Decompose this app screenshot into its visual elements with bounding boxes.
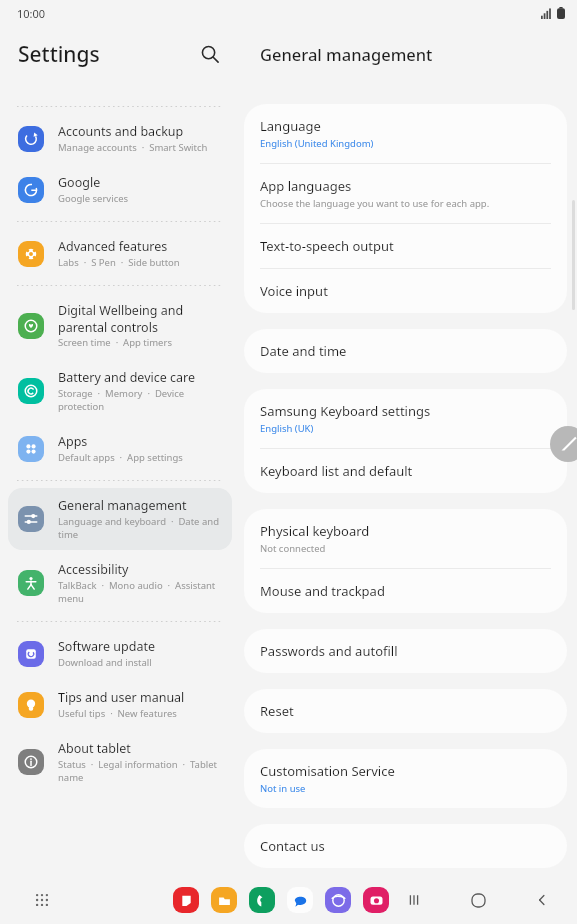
staticText: Keyboard list and default xyxy=(260,462,413,480)
staticText: App languages xyxy=(260,177,352,195)
button[interactable]: Customisation Service xyxy=(244,749,567,808)
staticText: Date and time xyxy=(260,342,347,360)
button[interactable]: Edit xyxy=(550,426,577,462)
button[interactable]: phone xyxy=(249,887,275,913)
button[interactable]: Contact us xyxy=(244,824,567,868)
button[interactable]: Digital Wellbeing and parental controls xyxy=(8,293,232,358)
staticText: Software update xyxy=(58,638,155,655)
staticText: General management xyxy=(58,497,187,514)
staticText: Labs · S Pen · Side button xyxy=(58,256,180,269)
staticText: Google xyxy=(58,174,101,191)
button[interactable]: note xyxy=(173,887,199,913)
button[interactable]: Physical keyboard xyxy=(244,509,567,568)
button[interactable]: Keyboard list and default xyxy=(244,449,567,493)
staticText: Samsung Keyboard settings xyxy=(260,402,431,420)
staticText: Not in use xyxy=(260,782,306,795)
button[interactable]: Text-to-speech output xyxy=(244,224,567,268)
staticText: Voice input xyxy=(260,282,328,300)
button[interactable]: Mouse and trackpad xyxy=(244,569,567,613)
staticText: TalkBack · Mono audio · Assistant menu xyxy=(58,579,224,605)
button[interactable]: Passwords and autofill xyxy=(244,629,567,673)
staticText: Passwords and autofill xyxy=(260,642,398,660)
staticText: Manage accounts · Smart Switch xyxy=(58,141,208,154)
button[interactable]: Accessibility xyxy=(8,552,232,614)
staticText: Battery and device care xyxy=(58,369,196,386)
button[interactable]: App languages xyxy=(244,164,567,223)
staticText: English (UK) xyxy=(260,422,314,435)
button[interactable]: msg xyxy=(287,887,313,913)
staticText: Screen time · App timers xyxy=(58,336,172,349)
staticText: Mouse and trackpad xyxy=(260,582,385,600)
button[interactable]: Reset xyxy=(244,689,567,733)
button[interactable]: Tips and user manual xyxy=(8,680,232,729)
staticText: Storage · Memory · Device protection xyxy=(58,387,224,413)
button[interactable]: Back xyxy=(529,887,555,913)
staticText: Text-to-speech output xyxy=(260,237,394,255)
staticText: Not connected xyxy=(260,542,326,555)
staticText: Digital Wellbeing and parental controls xyxy=(58,302,224,335)
button[interactable]: About tablet xyxy=(8,731,232,793)
button[interactable]: Google xyxy=(8,165,232,214)
button[interactable]: Battery and device care xyxy=(8,360,232,422)
staticText: Language and keyboard · Date and time xyxy=(58,515,224,541)
staticText: General management xyxy=(260,43,433,65)
staticText: Google services xyxy=(58,192,129,205)
staticText: Default apps · App settings xyxy=(58,451,183,464)
staticText: Physical keyboard xyxy=(260,522,370,540)
staticText: Contact us xyxy=(260,837,325,855)
staticText: Language xyxy=(260,117,321,135)
staticText: Tips and user manual xyxy=(58,689,185,706)
staticText: Reset xyxy=(260,702,294,720)
staticText: Useful tips · New features xyxy=(58,707,177,720)
button[interactable]: Recents xyxy=(401,887,427,913)
button[interactable]: General management xyxy=(8,488,232,550)
button[interactable]: Apps xyxy=(8,424,232,473)
button[interactable]: Software update xyxy=(8,629,232,678)
staticText: Advanced features xyxy=(58,238,168,255)
staticText: Customisation Service xyxy=(260,762,395,780)
staticText: Choose the language you want to use for … xyxy=(260,197,490,210)
button[interactable]: internet xyxy=(325,887,351,913)
button[interactable]: Advanced features xyxy=(8,229,232,278)
button[interactable]: Date and time xyxy=(244,329,567,373)
button[interactable]: Voice input xyxy=(244,269,567,313)
staticText: English (United Kingdom) xyxy=(260,137,374,150)
staticText: About tablet xyxy=(58,740,131,757)
staticText: Accessibility xyxy=(58,561,129,578)
staticText: Status · Legal information · Tablet name xyxy=(58,758,224,784)
button[interactable]: All apps xyxy=(28,886,56,914)
staticText: Apps xyxy=(58,433,88,450)
button[interactable]: cam xyxy=(363,887,389,913)
staticText: Download and install xyxy=(58,656,152,669)
staticText: 10:00 xyxy=(17,6,46,21)
button[interactable]: Language xyxy=(244,104,567,163)
staticText: Settings xyxy=(18,40,100,69)
button[interactable]: Samsung Keyboard settings xyxy=(244,389,567,448)
button[interactable]: Home xyxy=(465,887,491,913)
button[interactable]: folder xyxy=(211,887,237,913)
staticText: Accounts and backup xyxy=(58,123,184,140)
button[interactable]: Search xyxy=(192,36,228,72)
button[interactable]: Accounts and backup xyxy=(8,114,232,163)
